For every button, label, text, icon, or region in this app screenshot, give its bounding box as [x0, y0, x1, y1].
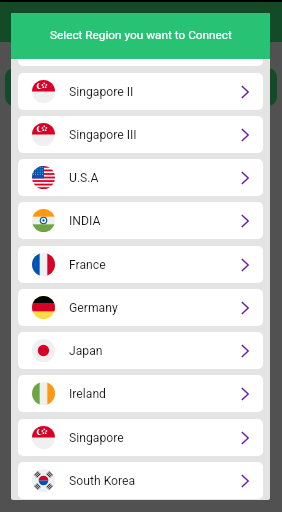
- staticText: France: [69, 258, 106, 272]
- button[interactable]: INDIA: [18, 202, 263, 239]
- staticText: Select Region you want to Connect: [50, 28, 232, 42]
- button[interactable]: Singapore II: [18, 73, 263, 110]
- button[interactable]: Japan: [18, 332, 263, 369]
- other: Open INDIA: [237, 211, 253, 231]
- staticText: Singapore: [69, 431, 124, 445]
- staticText: Germany: [69, 301, 118, 315]
- other: Open Singapore III: [237, 125, 253, 145]
- other: Open Singapore II: [237, 82, 253, 102]
- button[interactable]: U.S.A: [18, 159, 263, 196]
- other: Open Singapore: [237, 428, 253, 448]
- other: Open Ireland: [237, 384, 253, 404]
- other: Open Germany: [237, 298, 253, 318]
- staticText: Singapore II: [69, 85, 134, 99]
- other: Open South Korea: [237, 471, 253, 491]
- button[interactable]: France: [18, 246, 263, 283]
- staticText: South Korea: [69, 474, 136, 488]
- other: Open Japan: [237, 341, 253, 361]
- other: Open France: [237, 255, 253, 275]
- staticText: U.S.A: [69, 171, 99, 185]
- other: Open U.S.A: [237, 168, 253, 188]
- button[interactable]: Singapore III: [18, 116, 263, 153]
- button[interactable]: South Korea: [18, 462, 263, 499]
- staticText: Singapore III: [69, 128, 137, 142]
- button[interactable]: Ireland: [18, 375, 263, 412]
- staticText: Ireland: [69, 387, 106, 401]
- button[interactable]: Germany: [18, 289, 263, 326]
- staticText: INDIA: [69, 214, 101, 228]
- button[interactable]: Singapore: [18, 419, 263, 456]
- staticText: Japan: [69, 344, 103, 358]
